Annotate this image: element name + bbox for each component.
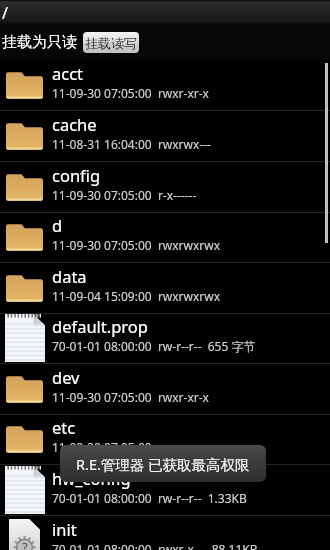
staticText: / [2, 2, 8, 24]
staticText: cache [52, 113, 97, 135]
staticText: ? [22, 538, 28, 550]
staticText: 挂载读写 [85, 35, 137, 51]
staticText: d [52, 214, 63, 236]
staticText: R.E.管理器 已获取最高权限 [76, 454, 250, 474]
button[interactable]: Folder [0, 414, 330, 464]
other: Text file [5, 466, 45, 514]
other: Unknown file [9, 519, 40, 550]
other: Folder [6, 173, 43, 201]
staticText: config [52, 164, 101, 186]
button[interactable]: 挂载为只读 [2, 33, 77, 52]
button[interactable]: Folder [0, 263, 330, 313]
staticText: 11-09-30 07:05:00 rwxr-xr-x [52, 389, 209, 405]
staticText: 11-09-30 07:05:00 rwxrwxrwx [52, 237, 221, 253]
staticText: dev [52, 366, 80, 388]
staticText: 11-09-30 07:05:00 r-x------ [52, 187, 197, 203]
staticText: 11-09-30 07:05:00 rwxr-xr-x [52, 85, 209, 101]
other: Folder [6, 71, 43, 99]
button[interactable]: Text file [0, 313, 330, 363]
other: Folder [6, 375, 43, 403]
button[interactable]: Folder [0, 60, 330, 110]
other: Folder [6, 223, 43, 251]
staticText: acct [52, 62, 84, 84]
other: Text file [5, 314, 45, 362]
button[interactable]: 挂载读写 [83, 32, 139, 53]
staticText: 70-01-01 08:00:00 rwxr-x--- 88.11KB [52, 541, 258, 550]
button[interactable]: Folder [0, 212, 330, 262]
button[interactable]: Unknown file [0, 516, 330, 550]
other: Folder [6, 122, 43, 150]
staticText: 70-01-01 08:00:00 rw-r--r-- 1.33KB [52, 490, 247, 506]
staticText: 70-01-01 08:00:00 rw-r--r-- 655 字节 [52, 338, 256, 354]
button[interactable]: Folder [0, 162, 330, 212]
button[interactable]: Folder [0, 364, 330, 414]
staticText: etc [52, 416, 76, 438]
other: Folder [6, 425, 43, 453]
staticText: data [52, 265, 87, 287]
staticText: default.prop [52, 315, 148, 337]
staticText: hw_config [52, 467, 131, 489]
staticText: 11-09-30 07:05:00 rwxrwxrwx [52, 439, 221, 455]
button[interactable]: Text file [0, 465, 330, 515]
button[interactable]: Folder [0, 111, 330, 161]
staticText: 11-09-04 15:09:00 rwxrwxrwx [52, 288, 221, 304]
staticText: 11-08-31 16:04:00 rwxrwx--- [52, 136, 211, 152]
staticText: init [52, 518, 77, 540]
other: Folder [6, 274, 43, 302]
